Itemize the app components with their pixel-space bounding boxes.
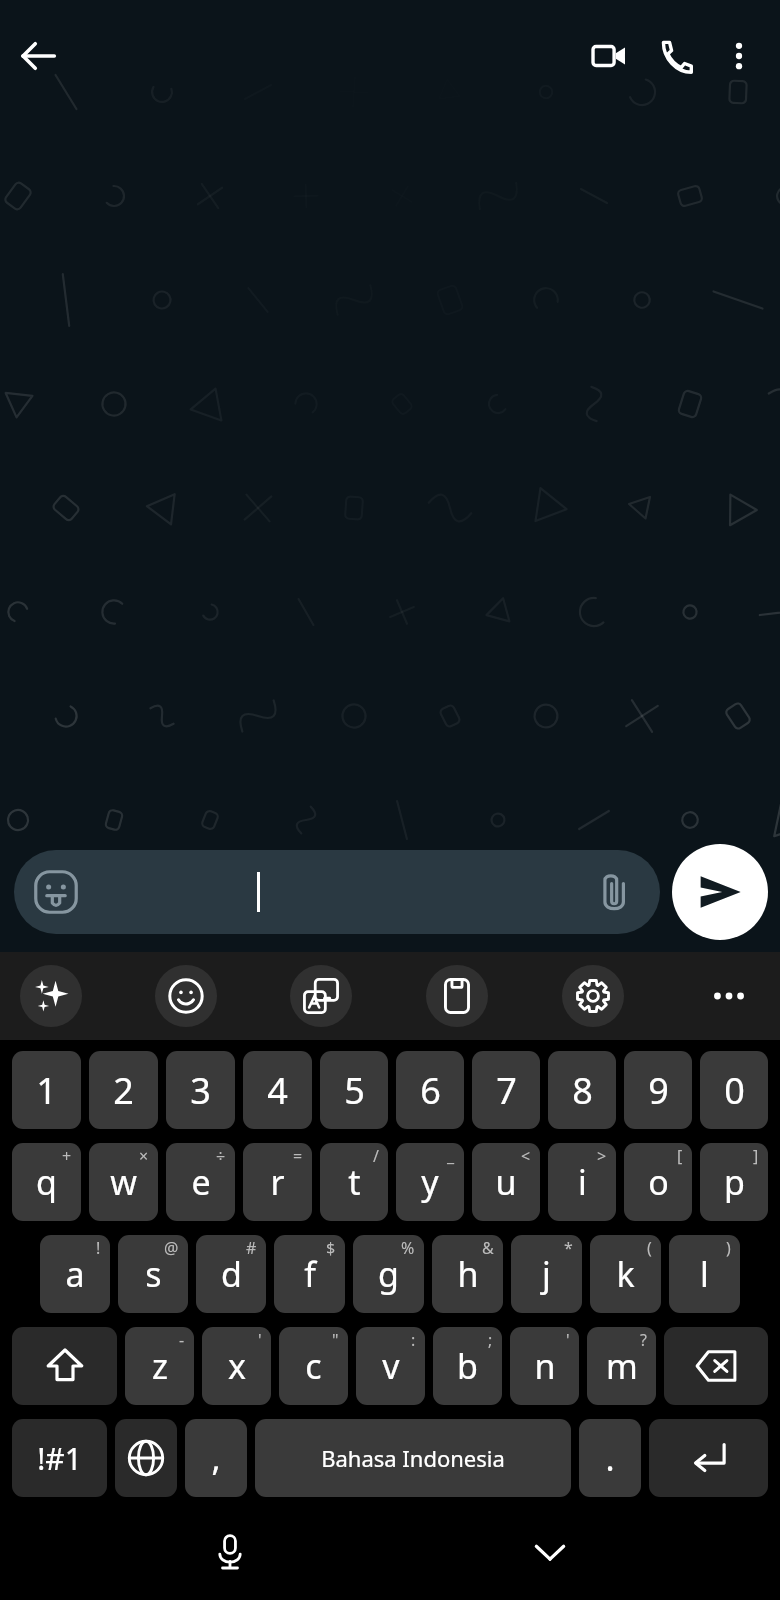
button[interactable]: y <box>396 1143 464 1221</box>
staticText: 9 <box>648 1066 669 1115</box>
button[interactable]: 4 <box>243 1051 312 1129</box>
button[interactable]: v <box>356 1327 425 1405</box>
staticText: x <box>228 1343 246 1389</box>
staticText: 0 <box>724 1066 745 1115</box>
staticText: k <box>616 1251 635 1297</box>
button[interactable]: Clipboard <box>426 965 488 1027</box>
button[interactable]: AI assist <box>20 965 82 1027</box>
staticText: ! <box>96 1237 101 1259</box>
button[interactable]: o <box>624 1143 692 1221</box>
button[interactable]: 7 <box>472 1051 540 1129</box>
staticText: 1 <box>36 1066 57 1115</box>
staticText: . <box>605 1435 615 1481</box>
staticText: ( <box>647 1237 652 1259</box>
staticText: o <box>648 1159 669 1205</box>
button[interactable]: l <box>669 1235 740 1313</box>
staticText: 4 <box>267 1066 288 1115</box>
button[interactable]: More <box>698 965 760 1027</box>
staticText: + <box>62 1145 72 1167</box>
button[interactable]: Back <box>6 24 70 88</box>
button[interactable]: g <box>353 1235 424 1313</box>
button[interactable]: Video call <box>576 23 642 89</box>
button[interactable]: !#1 <box>12 1419 107 1497</box>
staticText: 5 <box>344 1066 365 1115</box>
staticText: * <box>564 1237 573 1259</box>
button[interactable]: h <box>432 1235 503 1313</box>
button[interactable]: e <box>166 1143 235 1221</box>
staticText: [ <box>677 1145 683 1167</box>
button[interactable]: Send <box>672 844 768 940</box>
staticText: v <box>382 1343 400 1389</box>
button[interactable]: z <box>125 1327 194 1405</box>
staticText: d <box>221 1251 242 1297</box>
staticText: n <box>534 1343 556 1389</box>
button[interactable]: m <box>587 1327 656 1405</box>
staticText: > <box>597 1145 607 1167</box>
staticText: ] <box>753 1145 759 1167</box>
staticText: w <box>110 1159 137 1205</box>
button[interactable]: n <box>510 1327 579 1405</box>
button[interactable]: 5 <box>320 1051 388 1129</box>
button[interactable]: Settings <box>562 965 624 1027</box>
staticText: , <box>211 1435 221 1481</box>
button[interactable]: , <box>185 1419 247 1497</box>
button[interactable]: j <box>511 1235 582 1313</box>
staticText: b <box>457 1343 478 1389</box>
button[interactable]: Translate <box>290 965 352 1027</box>
button[interactable]: Attach <box>586 863 644 921</box>
button[interactable]: b <box>433 1327 502 1405</box>
button[interactable]: q <box>12 1143 81 1221</box>
button[interactable]: Shift <box>12 1327 117 1405</box>
staticText: i <box>578 1159 587 1205</box>
button[interactable]: 2 <box>89 1051 158 1129</box>
staticText: & <box>482 1237 494 1259</box>
button[interactable]: 3 <box>166 1051 235 1129</box>
staticText: j <box>542 1251 551 1297</box>
staticText: u <box>495 1159 517 1205</box>
button[interactable]: Voice input <box>195 1517 265 1587</box>
staticText: ) <box>726 1237 731 1259</box>
button[interactable]: Emoji <box>26 862 86 922</box>
button[interactable]: Enter <box>649 1419 768 1497</box>
staticText: ÷ <box>216 1145 226 1167</box>
button[interactable]: More options <box>708 25 770 87</box>
staticText: c <box>305 1343 322 1389</box>
staticText: l <box>700 1251 709 1297</box>
button[interactable]: c <box>279 1327 348 1405</box>
button[interactable]: r <box>243 1143 312 1221</box>
button[interactable]: s <box>118 1235 188 1313</box>
button[interactable]: p <box>700 1143 768 1221</box>
button[interactable]: 9 <box>624 1051 692 1129</box>
button[interactable]: Emoji <box>155 965 217 1027</box>
button[interactable]: k <box>590 1235 661 1313</box>
staticText: ; <box>488 1329 493 1351</box>
button[interactable]: Backspace <box>664 1327 768 1405</box>
staticText: % <box>401 1237 415 1259</box>
staticText: f <box>304 1251 316 1297</box>
staticText: < <box>521 1145 531 1167</box>
button[interactable]: Bahasa Indonesia <box>255 1419 571 1497</box>
staticText: !#1 <box>37 1438 82 1479</box>
button[interactable]: u <box>472 1143 540 1221</box>
button[interactable]: Emoji <box>14 850 660 934</box>
button[interactable]: t <box>320 1143 388 1221</box>
button[interactable]: . <box>579 1419 641 1497</box>
button[interactable]: 8 <box>548 1051 616 1129</box>
button[interactable]: 6 <box>396 1051 464 1129</box>
button[interactable]: 1 <box>12 1051 81 1129</box>
staticText: - <box>179 1329 185 1351</box>
staticText: Bahasa Indonesia <box>321 1443 505 1473</box>
button[interactable]: 0 <box>700 1051 768 1129</box>
button[interactable]: w <box>89 1143 158 1221</box>
button[interactable]: a <box>40 1235 110 1313</box>
button[interactable]: Voice call <box>642 23 708 89</box>
staticText: _ <box>447 1145 455 1167</box>
button[interactable]: Hide keyboard <box>515 1517 585 1587</box>
button[interactable]: Change language <box>115 1419 177 1497</box>
button[interactable]: d <box>196 1235 266 1313</box>
button[interactable]: i <box>548 1143 616 1221</box>
button[interactable]: f <box>274 1235 345 1313</box>
staticText: e <box>191 1159 211 1205</box>
staticText: " <box>332 1329 339 1351</box>
button[interactable]: x <box>202 1327 271 1405</box>
